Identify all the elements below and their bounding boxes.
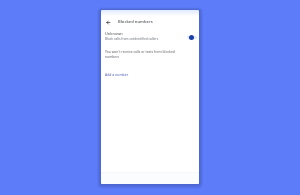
button[interactable]: Add a number (105, 72, 129, 77)
button[interactable]: Block unknown callers (186, 34, 198, 41)
staticText: Add a number (105, 72, 129, 77)
button[interactable]: Unknown (101, 30, 199, 44)
staticText: Unknown (105, 31, 123, 36)
staticText: Blocked numbers (118, 19, 153, 25)
staticText: Block calls from unidentified callers (105, 37, 159, 41)
button[interactable]: Back (102, 16, 114, 28)
staticText: You won't receive calls or texts from bl… (105, 49, 175, 59)
